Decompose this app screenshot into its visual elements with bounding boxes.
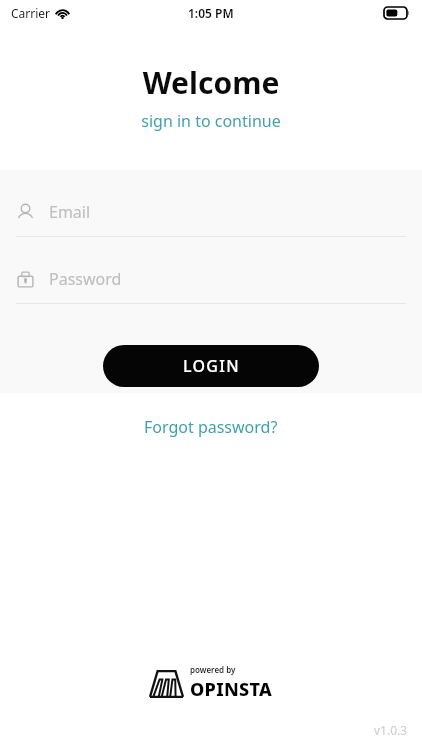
button[interactable]: Email: [0, 199, 422, 237]
staticText: Forgot password?: [144, 416, 278, 438]
staticText: Carrier: [11, 5, 51, 21]
staticText: Welcome: [0, 62, 422, 103]
other: Email: [16, 203, 35, 222]
staticText: Email: [49, 201, 91, 223]
button[interactable]: Password: [0, 266, 422, 304]
staticText: OPINSTA: [190, 677, 273, 702]
button[interactable]: Forgot password?: [132, 411, 290, 443]
staticText: 1:05 PM: [188, 5, 234, 21]
staticText: powered by: [190, 664, 236, 675]
button[interactable]: LOGIN: [103, 345, 319, 387]
staticText: Password: [49, 268, 122, 290]
staticText: v1.0.3: [374, 722, 408, 738]
staticText: LOGIN: [183, 355, 240, 377]
other: Password: [16, 270, 35, 289]
staticText: sign in to continue: [0, 110, 422, 132]
